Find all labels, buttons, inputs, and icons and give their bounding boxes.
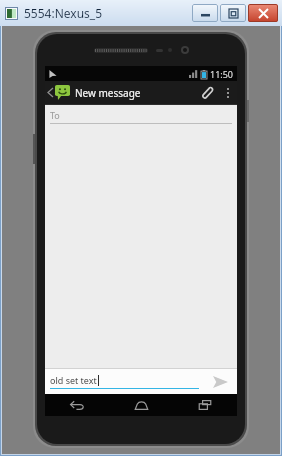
button[interactable]: Minimize (192, 4, 218, 22)
staticText: 5554:Nexus_5 (24, 5, 103, 21)
button[interactable]: Send (203, 369, 237, 394)
staticText: To (50, 109, 60, 121)
button[interactable]: More options (219, 81, 237, 104)
button[interactable]: Attach (193, 81, 219, 104)
button[interactable]: New message (48, 81, 145, 104)
staticText: 11:50 (210, 68, 234, 80)
staticText: New message (75, 86, 141, 100)
button[interactable]: old set text (50, 369, 199, 394)
button[interactable]: Close (248, 4, 278, 22)
button[interactable]: To (50, 105, 232, 124)
button[interactable]: Maximize (220, 4, 246, 22)
button[interactable]: Home (109, 394, 173, 416)
staticText: old set text (50, 374, 97, 386)
button[interactable]: Recents (173, 394, 237, 416)
button[interactable]: Back (45, 394, 109, 416)
